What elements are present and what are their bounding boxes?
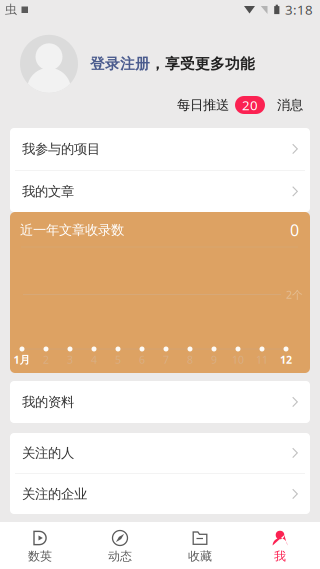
staticText: 3:18 <box>285 1 313 18</box>
staticText: 6 <box>139 352 145 367</box>
staticText: 9 <box>211 352 217 367</box>
button[interactable]: 关注的企业 <box>10 474 310 514</box>
staticText: 5 <box>115 352 121 367</box>
staticText: 0 <box>290 219 299 241</box>
staticText: 我的文章 <box>22 183 74 200</box>
button[interactable]: 我 <box>240 522 320 569</box>
staticText: 数英 <box>28 549 52 564</box>
staticText: 12 <box>280 352 292 367</box>
button[interactable]: 关注的人 <box>10 433 310 473</box>
staticText: 20 <box>242 96 258 114</box>
staticText: 收藏 <box>188 549 212 564</box>
button[interactable]: 我的文章 <box>10 171 310 212</box>
button[interactable]: 每日推送 <box>177 96 265 114</box>
button[interactable]: 消息 <box>265 93 303 117</box>
staticText: 3 <box>67 352 73 367</box>
staticText: 8 <box>187 352 193 367</box>
button[interactable]: 我参与的项目 <box>10 128 310 170</box>
staticText: 动态 <box>108 549 132 564</box>
staticText: 10 <box>232 352 244 367</box>
staticText: ，享受更多功能 <box>150 55 255 73</box>
staticText: 近一年文章收录数 <box>20 222 124 238</box>
button[interactable]: 数英 <box>0 522 80 569</box>
staticText: 4 <box>91 352 97 367</box>
staticText: 登录注册 <box>90 55 150 73</box>
button[interactable]: 登录注册 <box>78 55 255 73</box>
staticText: 我参与的项目 <box>22 141 100 157</box>
staticText: 消息 <box>277 97 303 113</box>
staticText: 我 <box>274 549 286 564</box>
staticText: 关注的人 <box>22 445 74 461</box>
button[interactable]: 动态 <box>80 522 160 569</box>
staticText: 虫 <box>5 2 17 17</box>
staticText: 我的资料 <box>22 394 74 410</box>
staticText: 每日推送 <box>177 97 229 113</box>
button[interactable]: 我的资料 <box>10 381 310 423</box>
staticText: 2 <box>43 352 49 367</box>
staticText: 7 <box>163 352 169 367</box>
staticText: 关注的企业 <box>22 486 87 502</box>
staticText: 1月 <box>13 352 30 367</box>
staticText: 11 <box>256 352 268 367</box>
button[interactable]: 收藏 <box>160 522 240 569</box>
staticText: 2个 <box>286 287 303 302</box>
